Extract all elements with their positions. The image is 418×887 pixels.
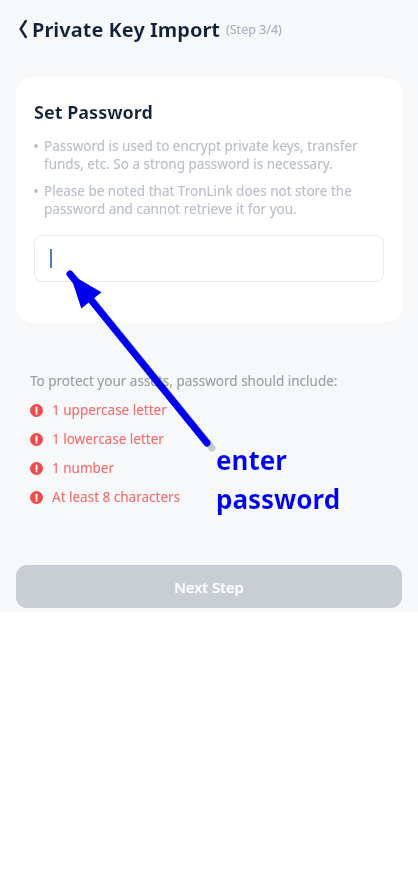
button[interactable] (34, 235, 384, 282)
staticText: 1 number (52, 459, 115, 477)
staticText: password (216, 481, 341, 516)
staticText: To protect your assets, password should … (30, 372, 338, 390)
staticText: enter (216, 442, 287, 477)
staticText: Private Key Import (32, 16, 221, 43)
staticText: Next Step (174, 577, 244, 597)
staticText: 1 uppercase letter (52, 401, 167, 419)
staticText: 1 lowercase letter (52, 430, 164, 448)
staticText: Set Password (34, 100, 153, 125)
staticText: Please be noted that TronLink does not s… (44, 182, 384, 218)
staticText: Password is used to encrypt private keys… (44, 137, 384, 173)
staticText: At least 8 characters (52, 488, 181, 506)
button[interactable]: Back (2, 9, 42, 49)
button[interactable]: Next Step (16, 565, 402, 608)
staticText: (Step 3/4) (226, 21, 282, 38)
